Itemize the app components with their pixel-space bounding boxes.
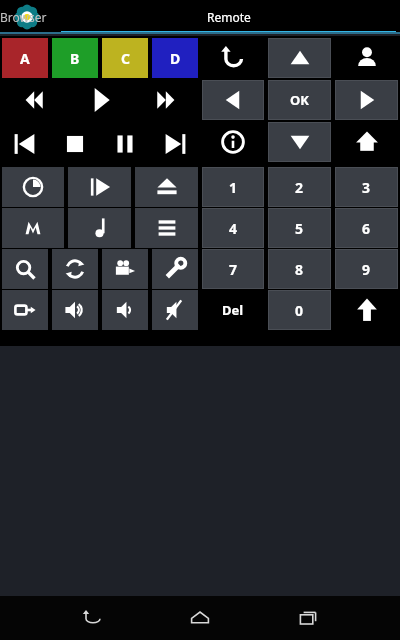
button[interactable]: Repeat	[52, 249, 98, 289]
button[interactable]: Fast forward	[133, 78, 200, 122]
button[interactable]: Volume up	[52, 290, 98, 330]
staticText: 7	[229, 260, 238, 279]
button[interactable]: B	[52, 38, 98, 78]
button[interactable]: Play	[66, 78, 133, 122]
button[interactable]: Down	[268, 122, 331, 162]
staticText: 3	[362, 178, 371, 197]
button[interactable]: Home	[333, 122, 400, 162]
button[interactable]: A	[2, 38, 48, 78]
button[interactable]: C	[102, 38, 148, 78]
staticText: A	[20, 49, 30, 68]
button[interactable]: Del	[200, 290, 266, 330]
button[interactable]: Previous	[0, 122, 50, 166]
button[interactable]: Right	[335, 80, 398, 120]
button[interactable]: Pause	[100, 122, 150, 166]
staticText: B	[70, 49, 80, 68]
staticText: Browser	[0, 9, 47, 25]
staticText: Del	[222, 301, 244, 319]
staticText: 0	[295, 301, 304, 320]
button[interactable]: Exit	[2, 290, 48, 330]
button[interactable]: 5	[268, 208, 331, 248]
button[interactable]: Recents	[286, 596, 330, 640]
button[interactable]: 3	[335, 167, 398, 207]
button[interactable]: 7	[202, 249, 264, 289]
button[interactable]: Info	[200, 122, 266, 162]
button[interactable]: Search	[2, 249, 48, 289]
button[interactable]: 8	[268, 249, 331, 289]
staticText: 9	[362, 260, 371, 279]
button[interactable]: Volume down	[102, 290, 148, 330]
button[interactable]: Remote	[61, 0, 396, 34]
button[interactable]: Eject	[135, 167, 198, 207]
button[interactable]: Back	[70, 596, 114, 640]
staticText: Remote	[207, 9, 251, 25]
button[interactable]: Subtitles	[2, 208, 64, 248]
staticText: C	[121, 49, 130, 68]
button[interactable]: Recordings	[102, 249, 148, 289]
button[interactable]: 4	[202, 208, 264, 248]
staticText: 1	[229, 178, 238, 197]
button[interactable]: Rewind	[0, 78, 66, 122]
button[interactable]: Home	[178, 596, 222, 640]
button[interactable]: App logo	[10, 0, 44, 34]
button[interactable]: Mute	[152, 290, 198, 330]
button[interactable]: 1	[202, 167, 264, 207]
button[interactable]: Browser	[0, 0, 47, 34]
button[interactable]: 6	[335, 208, 398, 248]
button[interactable]: OK	[268, 80, 331, 120]
button[interactable]: User	[333, 38, 400, 78]
button[interactable]: Menu	[135, 208, 198, 248]
button[interactable]: Settings	[152, 249, 198, 289]
button[interactable]: Step	[68, 167, 131, 207]
button[interactable]: Stop	[50, 122, 100, 166]
button[interactable]: Audio	[68, 208, 131, 248]
staticText: 5	[295, 219, 304, 238]
staticText: 6	[362, 219, 371, 238]
button[interactable]: Back	[200, 38, 266, 78]
button[interactable]: Up	[333, 290, 400, 330]
staticText: D	[170, 49, 181, 68]
staticText: 4	[229, 219, 238, 238]
button[interactable]: Next	[150, 122, 200, 166]
button[interactable]: 2	[268, 167, 331, 207]
staticText: 8	[295, 260, 304, 279]
button[interactable]: Up	[268, 38, 331, 78]
button[interactable]: 0	[268, 290, 331, 330]
button[interactable]: Clock	[2, 167, 64, 207]
staticText: 2	[295, 178, 304, 197]
button[interactable]: D	[152, 38, 198, 78]
staticText: OK	[290, 91, 309, 109]
button[interactable]: Left	[202, 80, 264, 120]
button[interactable]: 9	[335, 249, 398, 289]
